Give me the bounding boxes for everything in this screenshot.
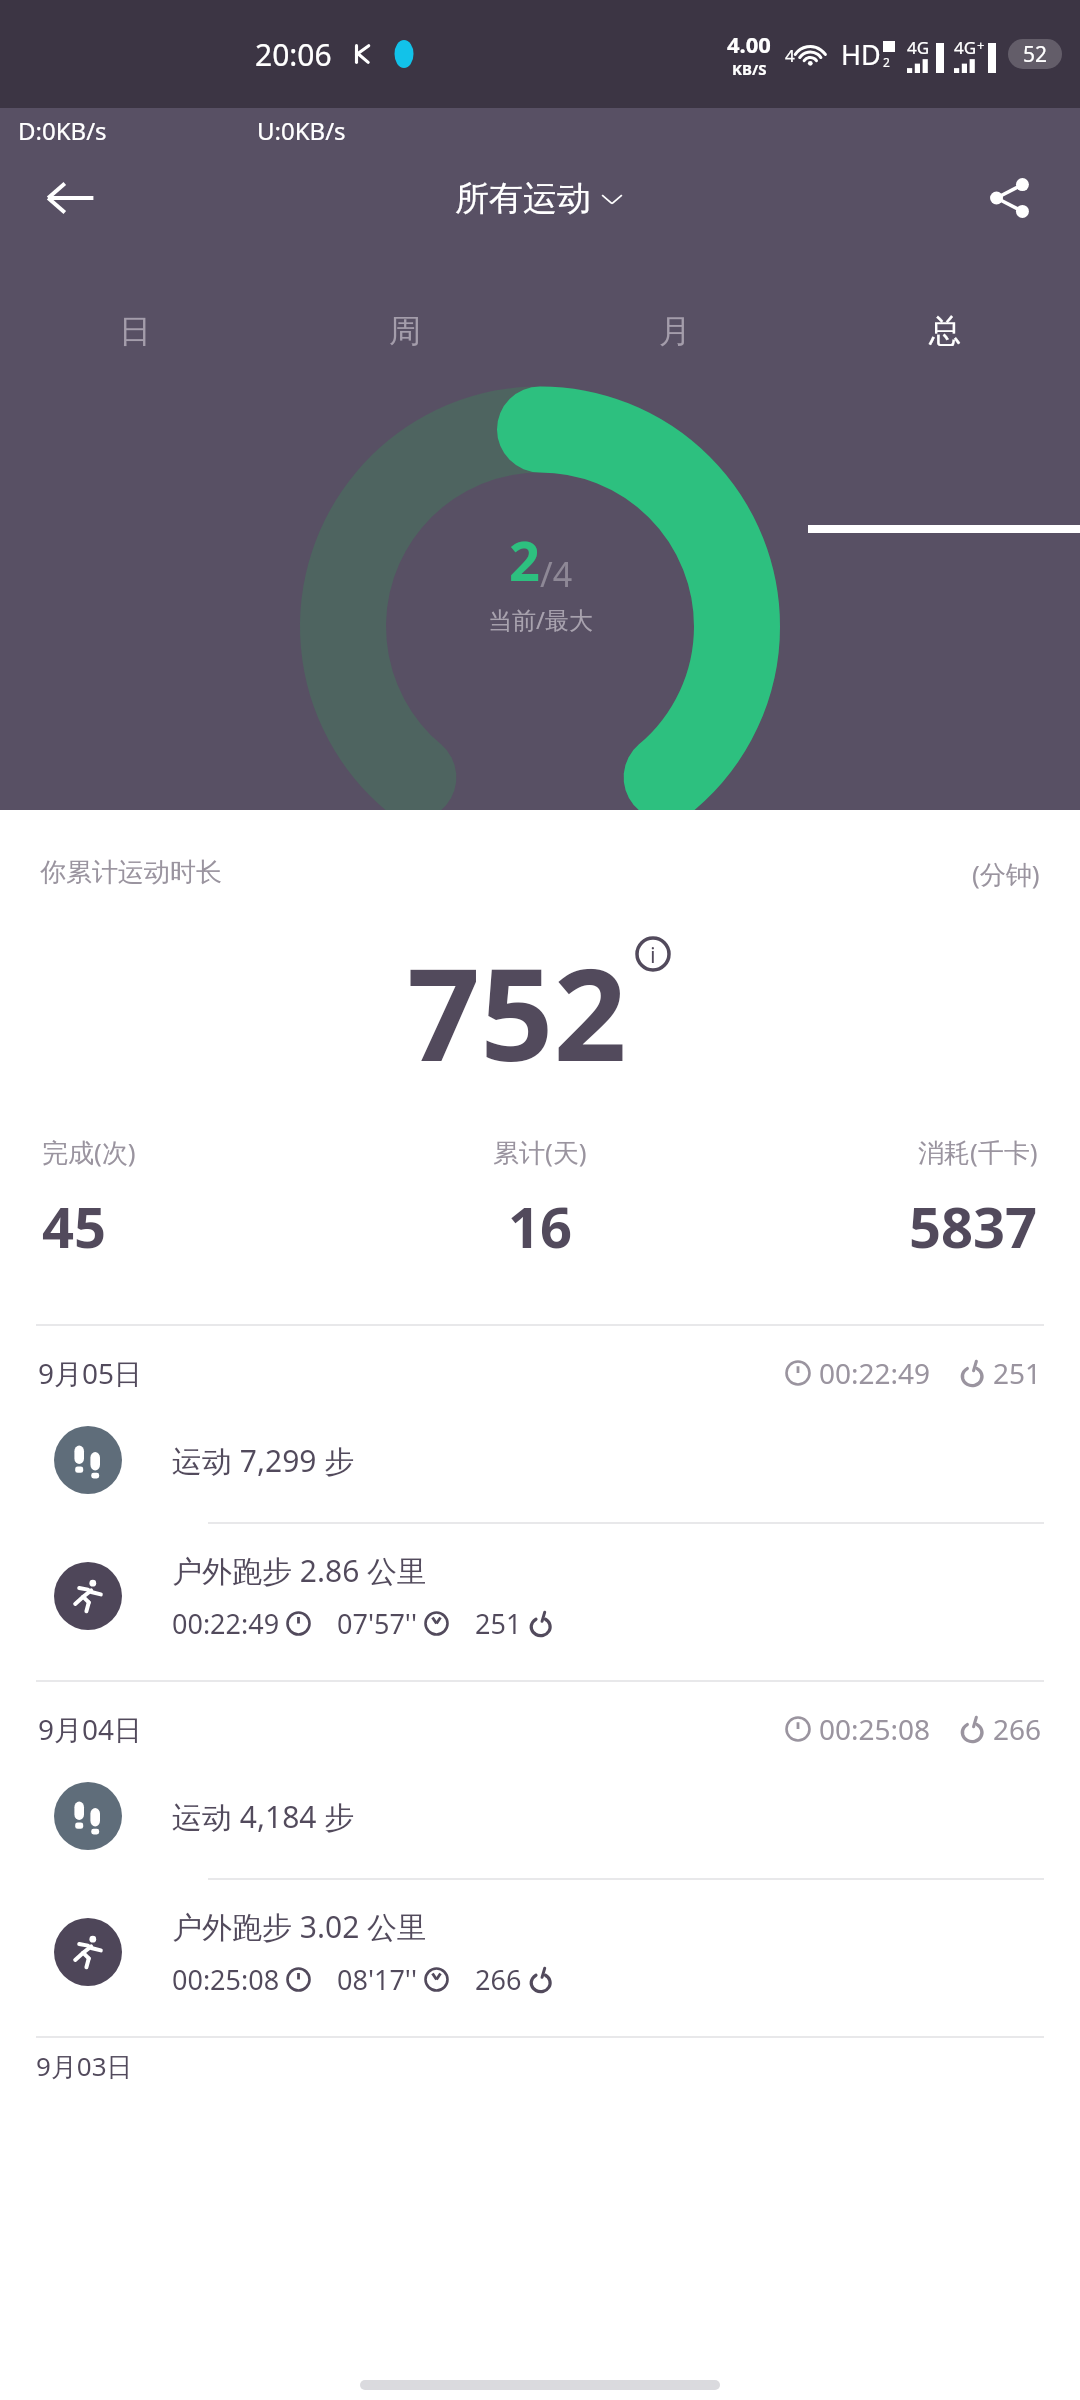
staticText: 运动 7,299 步 (172, 1440, 355, 1481)
button[interactable]: Share (966, 158, 1052, 238)
staticText: 当前/最大 (488, 603, 593, 636)
button[interactable]: 所有运动 (455, 177, 625, 220)
staticText: HD (841, 36, 881, 73)
staticText: 45 (42, 1188, 107, 1264)
button[interactable]: Back (30, 158, 110, 238)
staticText: 周 (389, 311, 421, 351)
staticText: 07'57'' (337, 1605, 418, 1642)
staticText: 266 (475, 1961, 522, 1998)
staticText: 752 (407, 924, 627, 1098)
button[interactable]: 日 (0, 266, 270, 396)
button[interactable]: Info (633, 934, 673, 974)
staticText: 你累计运动时长 (40, 856, 222, 889)
staticText: 00:25:08 (172, 1961, 280, 1998)
staticText: 9月03日 (36, 2048, 133, 2084)
staticText: 2 (883, 54, 890, 70)
staticText: U:0KB/s (257, 114, 346, 147)
button[interactable]: 总 (810, 266, 1080, 396)
staticText: 完成(次) (42, 1134, 136, 1170)
button[interactable]: 户外跑步 2.86 公里 (0, 1546, 1080, 1646)
button[interactable]: 运动 7,299 步 (0, 1420, 1080, 1500)
staticText: 4.00 (727, 29, 771, 59)
button[interactable]: 户外跑步 3.02 公里 (0, 1902, 1080, 2002)
staticText: i (650, 939, 656, 969)
staticText: 运动 4,184 步 (172, 1796, 355, 1837)
staticText: /4 (540, 551, 573, 597)
staticText: 所有运动 (455, 177, 591, 220)
staticText: 00:22:49 (819, 1354, 931, 1392)
staticText: (分钟) (972, 856, 1040, 892)
staticText: D:0KB/s (18, 114, 107, 147)
staticText: 16 (508, 1188, 573, 1264)
button[interactable]: 周 (270, 266, 540, 396)
staticText: 266 (993, 1710, 1042, 1748)
staticText: KB/S (732, 59, 767, 79)
staticText: 消耗(千卡) (918, 1134, 1038, 1170)
staticText: 4G (907, 36, 930, 59)
staticText: 251 (475, 1605, 522, 1642)
staticText: 52 (1023, 40, 1048, 69)
staticText: 总 (929, 311, 961, 351)
staticText: 户外跑步 3.02 公里 (172, 1906, 428, 1947)
staticText: 累计(天) (493, 1134, 587, 1170)
staticText: 20:06 (255, 34, 332, 75)
button[interactable]: 月 (540, 266, 810, 396)
staticText: 户外跑步 2.86 公里 (172, 1550, 428, 1591)
staticText: + (977, 36, 985, 54)
staticText: 4 (785, 44, 795, 67)
staticText: 4G (954, 36, 977, 59)
staticText: 9月05日 (38, 1354, 143, 1392)
staticText: 2 (509, 523, 540, 597)
staticText: 日 (119, 311, 151, 351)
staticText: 251 (993, 1354, 1042, 1392)
staticText: 00:25:08 (819, 1710, 931, 1748)
button[interactable]: 运动 4,184 步 (0, 1776, 1080, 1856)
staticText: 5837 (909, 1188, 1038, 1264)
staticText: 00:22:49 (172, 1605, 280, 1642)
staticText: 月 (659, 311, 691, 351)
staticText: 08'17'' (337, 1961, 418, 1998)
staticText: 9月04日 (38, 1710, 143, 1748)
